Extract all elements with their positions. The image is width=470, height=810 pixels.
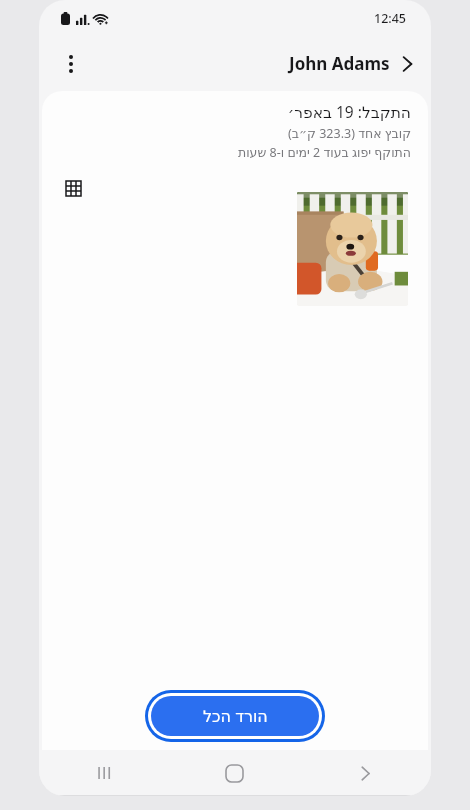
button[interactable]: John Adams bbox=[283, 46, 419, 81]
staticText: קובץ אחד (323.3 ק״ב) bbox=[288, 125, 411, 142]
staticText: התקבל: 19 באפר׳ bbox=[287, 101, 411, 122]
button[interactable]: Back bbox=[300, 750, 431, 796]
button[interactable]: Recent apps bbox=[39, 750, 169, 796]
button[interactable]: Grid view bbox=[56, 171, 90, 205]
button[interactable]: More options bbox=[49, 42, 93, 86]
staticText: 12:45 bbox=[374, 10, 407, 27]
button[interactable] bbox=[297, 192, 408, 306]
button[interactable]: הורד הכל bbox=[145, 690, 325, 742]
staticText: התוקף יפוג בעוד 2 ימים ו-8 שעות bbox=[238, 144, 411, 161]
button[interactable]: Home bbox=[169, 750, 300, 796]
staticText: John Adams bbox=[289, 52, 390, 75]
staticText: הורד הכל bbox=[203, 705, 268, 727]
